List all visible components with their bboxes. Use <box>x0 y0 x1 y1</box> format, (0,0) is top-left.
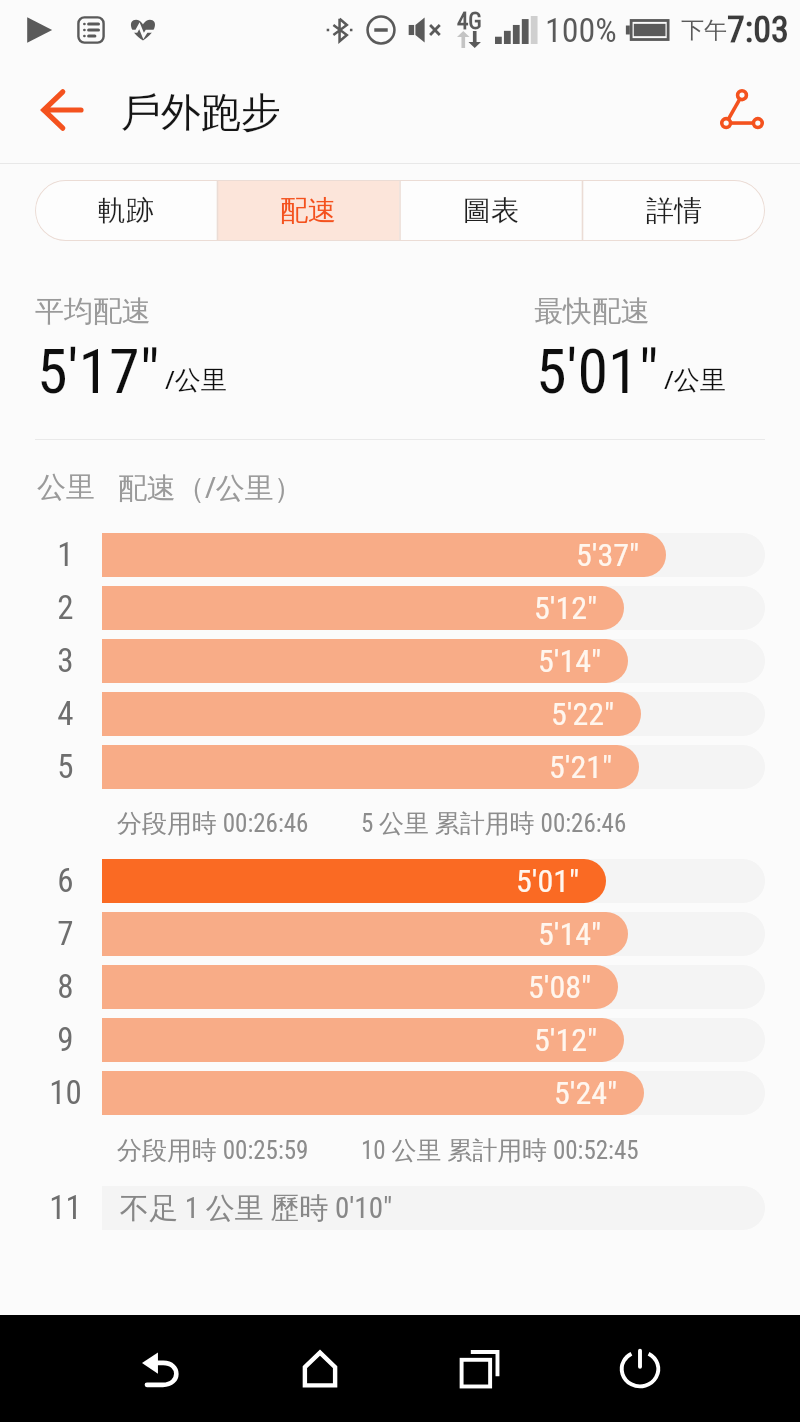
staticText: 5'08" <box>528 968 592 1006</box>
button[interactable]: 圖表 <box>399 180 582 241</box>
button[interactable]: 1 <box>0 528 800 581</box>
button[interactable]: 7 <box>0 907 800 960</box>
staticText: 5 公里 累計用時 00:26:46 <box>361 808 627 839</box>
staticText: 5'14" <box>538 915 602 953</box>
button[interactable]: 軌跡 <box>35 180 217 241</box>
button[interactable]: 2 <box>0 581 800 634</box>
button[interactable]: 配速 <box>217 180 399 241</box>
button[interactable]: 3 <box>0 634 800 687</box>
button[interactable]: Share <box>700 70 784 154</box>
staticText: 10 <box>0 1073 131 1112</box>
button[interactable]: 4 <box>0 687 800 740</box>
button[interactable]: 10 <box>0 1066 800 1119</box>
staticText: 3 <box>0 641 131 680</box>
staticText: /公里 <box>165 361 227 397</box>
staticText: 5'17" <box>37 335 160 408</box>
button[interactable]: 8 <box>0 960 800 1013</box>
staticText: 最快配速 <box>534 293 650 330</box>
staticText: 5'01" <box>516 862 580 900</box>
staticText: 4G <box>457 8 482 35</box>
button[interactable]: Power <box>560 1315 720 1422</box>
staticText: 5'12" <box>534 1021 598 1059</box>
staticText: 1 <box>0 535 131 574</box>
staticText: 11 <box>0 1188 131 1227</box>
button[interactable]: 5 <box>0 740 800 793</box>
button[interactable]: Home <box>240 1315 400 1422</box>
staticText: 公里 <box>37 469 95 506</box>
staticText: 5'01" <box>536 335 659 408</box>
staticText: 5'37" <box>576 536 640 574</box>
staticText: 戶外跑步 <box>121 87 281 137</box>
staticText: 5'24" <box>554 1074 618 1112</box>
staticText: 下午 <box>681 16 727 45</box>
staticText: 9 <box>0 1020 131 1059</box>
staticText: 5 <box>0 747 131 786</box>
staticText: 分段用時 00:26:46 <box>117 808 309 839</box>
staticText: 分段用時 00:25:59 <box>117 1135 309 1166</box>
staticText: 配速（/公里） <box>118 467 303 507</box>
staticText: 詳情 <box>646 193 702 228</box>
staticText: /公里 <box>664 361 726 397</box>
staticText: 5'14" <box>538 642 602 680</box>
staticText: 6 <box>0 861 131 900</box>
staticText: 10 公里 累計用時 00:52:45 <box>361 1135 639 1166</box>
staticText: 平均配速 <box>35 293 151 330</box>
button[interactable]: 11 <box>0 1181 800 1234</box>
staticText: 8 <box>0 967 131 1006</box>
staticText: 圖表 <box>463 193 519 228</box>
button[interactable]: Back <box>81 1315 240 1422</box>
button[interactable]: Recent apps <box>400 1315 560 1422</box>
staticText: 5'22" <box>551 695 615 733</box>
staticText: 4 <box>0 694 131 733</box>
staticText: 不足 1 公里 歷時 0'10" <box>120 1190 393 1227</box>
button[interactable]: 詳情 <box>582 180 765 241</box>
staticText: 5'21" <box>549 748 613 786</box>
staticText: 軌跡 <box>98 193 154 228</box>
button[interactable]: 9 <box>0 1013 800 1066</box>
button[interactable]: Back <box>20 68 104 152</box>
staticText: 配速 <box>280 193 336 228</box>
staticText: 100% <box>545 10 617 50</box>
staticText: 7 <box>0 914 131 953</box>
button[interactable]: 6 <box>0 854 800 907</box>
staticText: 2 <box>0 588 131 627</box>
staticText: 7:03 <box>727 9 789 51</box>
staticText: 5'12" <box>534 589 598 627</box>
